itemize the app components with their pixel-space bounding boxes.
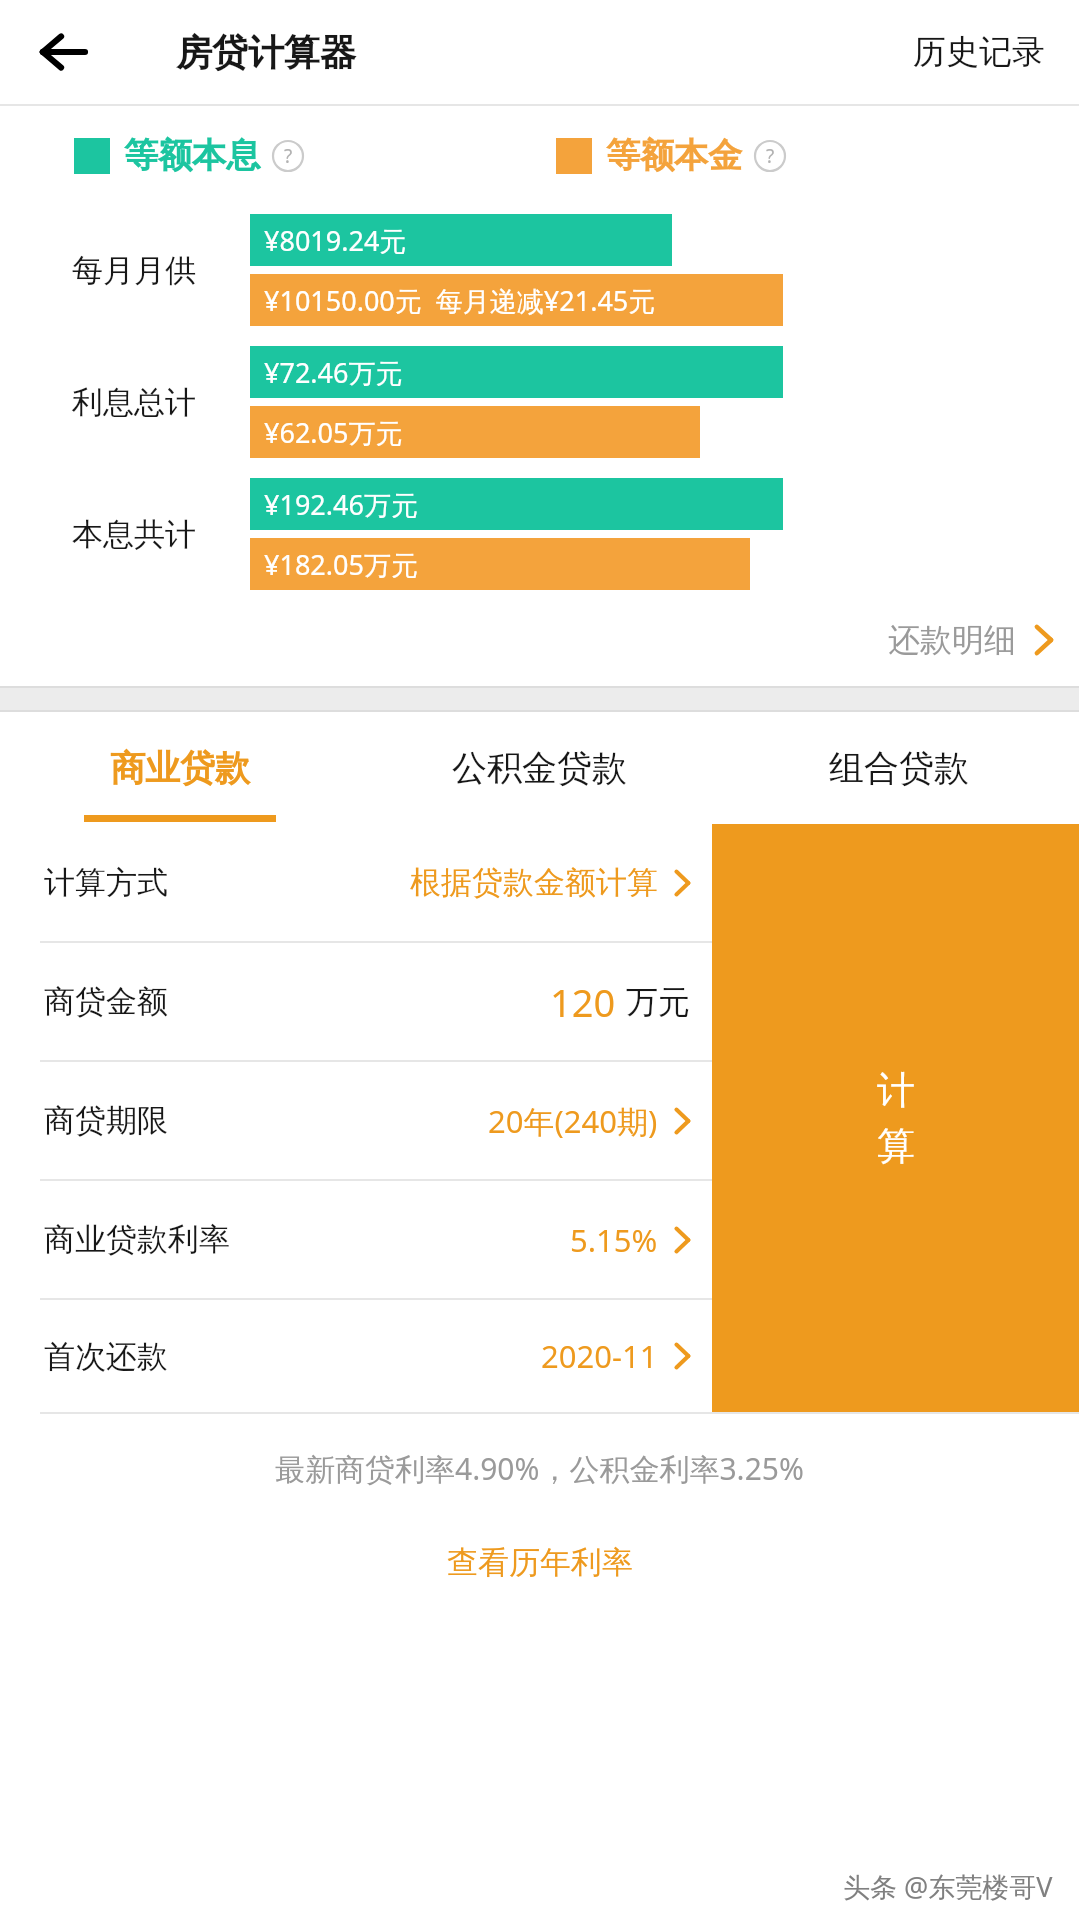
staticText: 查看历年利率 <box>447 1543 633 1582</box>
button[interactable]: 等额本金 <box>556 134 786 177</box>
staticText: 计算方式 <box>44 863 168 902</box>
button[interactable]: 还款明细 <box>862 608 1079 672</box>
staticText: 商贷期限 <box>44 1101 168 1140</box>
staticText: 等额本金 <box>606 134 742 177</box>
staticText: 万元 <box>626 982 690 1022</box>
button[interactable]: 组合贷款 <box>719 712 1079 824</box>
staticText: ¥72.46万元 <box>264 354 403 391</box>
staticText: 还款明细 <box>888 620 1016 660</box>
staticText: 120 <box>550 976 616 1028</box>
button[interactable]: 公积金贷款 <box>359 712 719 824</box>
staticText: ¥182.05万元 <box>264 546 418 583</box>
staticText: 历史记录 <box>913 31 1045 73</box>
staticText: 最新商贷利率4.90%，公积金利率3.25% <box>275 1448 804 1489</box>
staticText: ¥10150.00元 每月递减¥21.45元 <box>264 282 656 319</box>
staticText: 头条 @东莞楼哥V <box>843 1868 1053 1905</box>
button[interactable]: 查看历年利率 <box>427 1535 653 1590</box>
staticText: 房贷计算器 <box>176 30 356 75</box>
staticText: ? <box>284 143 293 169</box>
staticText: 5.15% <box>570 1219 658 1261</box>
button[interactable]: 计 <box>712 824 1079 1412</box>
staticText: 商业贷款 <box>110 746 250 790</box>
button[interactable]: 商业贷款 <box>0 712 359 824</box>
button[interactable]: 等额本息 <box>74 134 304 177</box>
button[interactable]: 返回 <box>24 13 102 91</box>
staticText: ¥8019.24元 <box>264 222 407 259</box>
button[interactable]: 商贷期限 <box>0 1062 712 1179</box>
staticText: 本息共计 <box>72 515 196 554</box>
button[interactable]: 商业贷款利率 <box>0 1181 712 1298</box>
staticText: 20年(240期) <box>488 1100 658 1142</box>
staticText: 公积金贷款 <box>452 746 627 790</box>
button[interactable]: 计算方式 <box>0 824 712 941</box>
staticText: 首次还款 <box>44 1337 168 1376</box>
staticText: 计 <box>877 1066 915 1114</box>
staticText: ¥192.46万元 <box>264 486 418 523</box>
button[interactable]: 首次还款 <box>0 1300 712 1412</box>
staticText: ¥62.05万元 <box>264 414 403 451</box>
staticText: 利息总计 <box>72 383 196 422</box>
staticText: 组合贷款 <box>829 746 969 790</box>
staticText: 等额本息 <box>124 134 260 177</box>
staticText: 每月月供 <box>72 251 196 290</box>
button[interactable]: 历史记录 <box>879 15 1079 89</box>
staticText: 商业贷款利率 <box>44 1220 230 1259</box>
button[interactable]: 商贷金额 <box>0 943 712 1060</box>
staticText: 2020-11 <box>541 1335 658 1377</box>
staticText: 根据贷款金额计算 <box>410 863 658 902</box>
staticText: 算 <box>877 1122 915 1170</box>
staticText: 商贷金额 <box>44 982 168 1021</box>
staticText: ? <box>766 143 775 169</box>
